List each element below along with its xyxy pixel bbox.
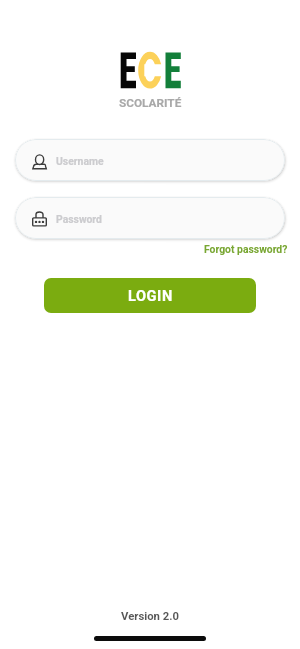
other: Password: [32, 211, 47, 226]
staticText: SCOLARITÉ: [119, 96, 182, 110]
button[interactable]: LOGIN: [44, 278, 256, 313]
staticText: LOGIN: [128, 287, 173, 304]
button[interactable]: Username: [15, 139, 285, 181]
staticText: Password: [56, 213, 102, 225]
button[interactable]: Password: [15, 197, 285, 239]
button[interactable]: Forgot password?: [204, 243, 288, 255]
other: Username: [32, 153, 47, 168]
staticText: Username: [56, 155, 104, 167]
staticText: Version 2.0: [121, 610, 179, 623]
